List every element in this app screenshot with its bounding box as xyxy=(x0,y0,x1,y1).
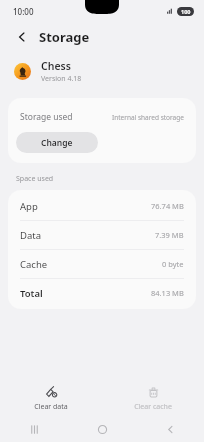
button[interactable]: Back xyxy=(136,417,204,442)
staticText: Total xyxy=(20,287,43,300)
staticText: Internal shared storage xyxy=(112,113,184,122)
staticText: Chess xyxy=(41,59,71,73)
button[interactable]: Change xyxy=(16,132,98,153)
staticText: 7.39 MB xyxy=(155,230,184,240)
staticText: Data xyxy=(20,229,42,242)
staticText: Clear data xyxy=(34,402,68,412)
staticText: 84.13 MB xyxy=(151,288,184,298)
button[interactable]: App xyxy=(8,192,196,220)
staticText: 10:00 xyxy=(13,6,34,17)
staticText: Change xyxy=(41,137,73,149)
button[interactable]: Cache xyxy=(8,250,196,278)
staticText: 76.74 MB xyxy=(151,201,184,211)
button[interactable]: Data xyxy=(8,221,196,249)
button[interactable]: Clear cache xyxy=(102,384,204,414)
staticText: App xyxy=(20,200,38,213)
staticText: Clear cache xyxy=(134,402,172,412)
staticText: Version 4.18 xyxy=(41,74,82,84)
button[interactable]: Total xyxy=(8,279,196,307)
staticText: Storage used xyxy=(20,111,73,123)
staticText: Space used xyxy=(16,174,54,184)
staticText: 100 xyxy=(181,8,191,15)
staticText: Storage xyxy=(39,28,90,46)
staticText: 0 byte xyxy=(162,259,184,269)
button[interactable]: Back xyxy=(12,27,32,47)
button[interactable]: Clear data xyxy=(0,384,102,414)
staticText: Cache xyxy=(20,258,48,271)
button[interactable]: Recents xyxy=(0,417,68,442)
button[interactable]: Home xyxy=(68,417,136,442)
